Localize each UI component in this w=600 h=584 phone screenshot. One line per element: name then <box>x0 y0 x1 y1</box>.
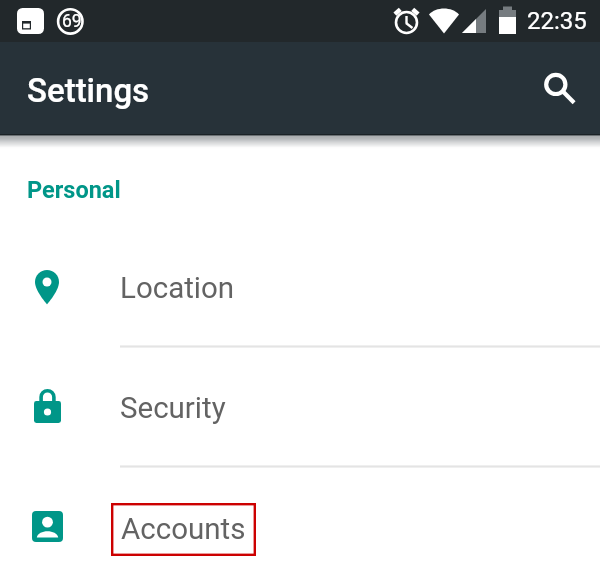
button[interactable]: Security <box>0 347 600 467</box>
staticText: Settings <box>27 71 150 110</box>
staticText: Accounts <box>121 512 246 547</box>
staticText: Location <box>120 271 235 306</box>
button[interactable]: Search <box>526 56 590 120</box>
staticText: 69 <box>62 11 82 32</box>
button[interactable]: Location <box>0 227 600 347</box>
staticText: 22:35 <box>527 7 587 35</box>
staticText: Security <box>120 391 226 426</box>
staticText: Personal <box>27 176 121 204</box>
button[interactable]: Accounts <box>0 466 600 584</box>
